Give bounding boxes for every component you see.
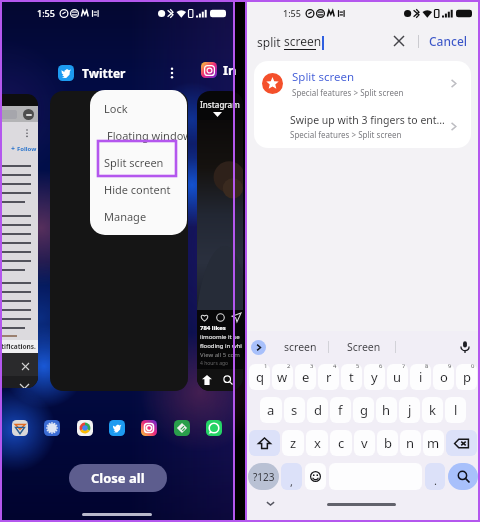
button[interactable]: Search	[448, 463, 478, 490]
button[interactable]: Emoji	[305, 463, 326, 490]
button[interactable]: v	[354, 430, 375, 456]
button[interactable]	[50, 91, 188, 391]
button[interactable]: Messages	[44, 420, 60, 436]
staticText: Swipe up with 3 fingers to ent…	[290, 113, 445, 127]
button[interactable]: Screen	[345, 335, 383, 359]
button[interactable]: Split screen	[254, 61, 471, 105]
staticText: screen	[284, 340, 317, 354]
staticText: notifications.	[0, 342, 36, 351]
button[interactable]: ,	[281, 463, 302, 490]
button[interactable]: Chrome	[77, 420, 93, 436]
button[interactable]: +	[0, 94, 38, 388]
button[interactable]: Shift	[249, 430, 280, 456]
button[interactable]: .	[425, 463, 445, 490]
staticText: r	[326, 368, 332, 386]
button[interactable]: z	[282, 430, 304, 456]
button[interactable]: Feedly	[174, 420, 190, 436]
staticText: t	[349, 368, 354, 386]
staticText: 9	[448, 364, 452, 370]
button[interactable]: ?123	[248, 463, 279, 490]
button[interactable]: e	[295, 364, 316, 390]
button[interactable]: Cancel	[428, 29, 469, 53]
staticText: View all 5 com	[200, 351, 240, 359]
staticText: Instagram	[200, 99, 240, 110]
button[interactable]: j	[399, 397, 420, 423]
button[interactable]: Clear text	[388, 30, 410, 52]
button[interactable]: Close all	[69, 464, 167, 492]
staticText: i	[419, 368, 423, 386]
staticText: ?123	[253, 470, 275, 484]
staticText: 7	[402, 364, 406, 370]
staticText: v	[361, 434, 368, 452]
button[interactable]: y	[364, 364, 385, 390]
staticText: o	[440, 368, 448, 386]
staticText: iimoomie it se	[200, 333, 240, 341]
button[interactable]: t	[341, 364, 362, 390]
button[interactable]: Instagram	[197, 91, 243, 391]
staticText: 8	[425, 364, 429, 370]
staticText: split	[257, 34, 284, 50]
staticText: Screen	[347, 340, 381, 354]
button[interactable]: screen	[282, 335, 319, 359]
staticText: c	[338, 434, 345, 452]
staticText: Twitter	[82, 65, 126, 81]
button[interactable]: Voice input	[457, 339, 473, 355]
staticText: u	[393, 368, 402, 386]
staticText: k	[429, 401, 436, 419]
button[interactable]: Outlook	[12, 420, 28, 436]
button[interactable]: Hide content	[90, 176, 187, 203]
button[interactable]: i	[410, 364, 431, 390]
button[interactable]: b	[377, 430, 398, 456]
staticText: Close all	[91, 469, 145, 487]
button[interactable]: WhatsApp	[206, 420, 222, 436]
button[interactable]: l	[445, 397, 466, 423]
button[interactable]: Backspace	[446, 430, 477, 456]
button[interactable]: c	[330, 430, 352, 456]
button[interactable]: n	[400, 430, 421, 456]
staticText: s	[291, 401, 298, 419]
button[interactable]: k	[422, 397, 443, 423]
button[interactable]: x	[306, 430, 328, 456]
staticText: 1:55	[37, 7, 55, 19]
staticText: 5	[356, 364, 360, 370]
button[interactable]: More suggestions	[251, 340, 266, 355]
button[interactable]: d	[307, 397, 328, 423]
staticText: m	[427, 434, 440, 452]
staticText: screen	[284, 33, 322, 49]
button[interactable]: f	[330, 397, 351, 423]
staticText: 6	[379, 364, 383, 370]
button[interactable]: p	[456, 364, 477, 390]
button[interactable]: Twitter	[109, 420, 125, 436]
button[interactable]: m	[423, 430, 444, 456]
button[interactable]: r	[318, 364, 339, 390]
staticText: Manage	[104, 209, 147, 224]
staticText: 2	[287, 364, 291, 370]
button[interactable]: a	[260, 397, 282, 423]
button[interactable]: u	[387, 364, 408, 390]
button[interactable]: s	[284, 397, 305, 423]
staticText: q	[256, 368, 264, 386]
staticText: Cancel	[429, 33, 468, 49]
button[interactable]: Split screen	[90, 149, 187, 176]
staticText: In	[223, 61, 237, 79]
button[interactable]: Lock	[90, 95, 187, 122]
staticText: Split screen	[104, 155, 164, 170]
staticText: y	[371, 368, 378, 386]
staticText: Special features > Split screen	[292, 87, 404, 98]
button[interactable]: Twitter	[58, 64, 178, 81]
button[interactable]: o	[433, 364, 454, 390]
button[interactable]: In	[201, 60, 237, 80]
button[interactable]: q	[249, 364, 270, 390]
button[interactable]: Hide keyboard	[262, 495, 278, 511]
button[interactable]: h	[376, 397, 397, 423]
button[interactable]: More options	[165, 66, 178, 79]
button[interactable]: Instagram	[141, 420, 157, 436]
staticText: Special features > Split screen	[290, 129, 402, 140]
button[interactable]: g	[353, 397, 374, 423]
button[interactable]: Floating window	[90, 122, 187, 149]
staticText: 3	[310, 364, 314, 370]
button[interactable]: Swipe up with 3 fingers to ent…	[254, 105, 471, 148]
button[interactable]: w	[272, 364, 293, 390]
button[interactable]: Manage	[90, 203, 187, 230]
